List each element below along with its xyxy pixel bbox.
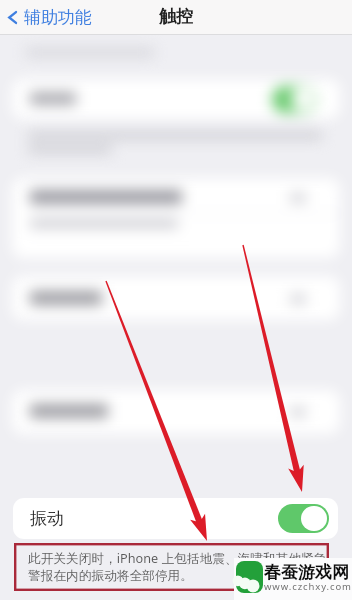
staticText: 辅助功能 [24, 7, 92, 28]
staticText: 春蚕游戏网 [264, 562, 349, 583]
button[interactable]: 振动 [13, 498, 338, 539]
staticText: 警报在内的振动将全部停用。 [28, 568, 193, 584]
staticText: 此开关关闭时，iPhone 上包括地震、海啸和其他紧急 [28, 549, 327, 566]
button[interactable]: 振动开关 [278, 504, 329, 533]
staticText: 振动 [30, 508, 64, 529]
button[interactable]: 辅助功能 [4, 2, 95, 33]
staticText: 触控 [159, 6, 193, 27]
staticText: www.czchxy.com [264, 580, 352, 593]
